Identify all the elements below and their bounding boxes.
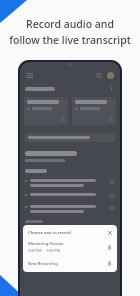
button[interactable]: Record — [106, 244, 113, 251]
button[interactable]: Action — [25, 179, 115, 187]
button[interactable] — [72, 97, 116, 125]
button[interactable]: Action — [25, 205, 115, 213]
button[interactable]: Action — [109, 193, 115, 199]
button[interactable] — [25, 133, 115, 142]
button[interactable]: Menu — [25, 71, 34, 80]
button[interactable] — [24, 97, 68, 125]
button[interactable]: Action — [25, 193, 115, 199]
staticText: 3:00 PM - 5:00 PM — [28, 248, 60, 253]
button[interactable] — [65, 231, 72, 238]
button[interactable]: Account — [106, 71, 115, 80]
button[interactable]: Record — [106, 260, 113, 267]
button[interactable] — [26, 231, 33, 238]
button[interactable] — [52, 231, 59, 238]
button[interactable]: Marketing Review — [28, 241, 113, 253]
button[interactable]: Action — [109, 205, 115, 211]
button[interactable]: More options — [108, 85, 115, 92]
button[interactable] — [39, 231, 46, 238]
button[interactable]: Search — [94, 71, 103, 80]
staticText: Choose one to record — [28, 230, 71, 236]
button[interactable]: Action — [109, 179, 115, 185]
button[interactable]: Close — [106, 229, 113, 236]
staticText: New Recording — [28, 261, 106, 267]
staticText: Marketing Review — [28, 241, 63, 247]
staticText: follow the live transcript — [9, 33, 131, 47]
staticText: Record audio and — [26, 17, 114, 31]
button[interactable]: New Recording — [28, 260, 113, 267]
